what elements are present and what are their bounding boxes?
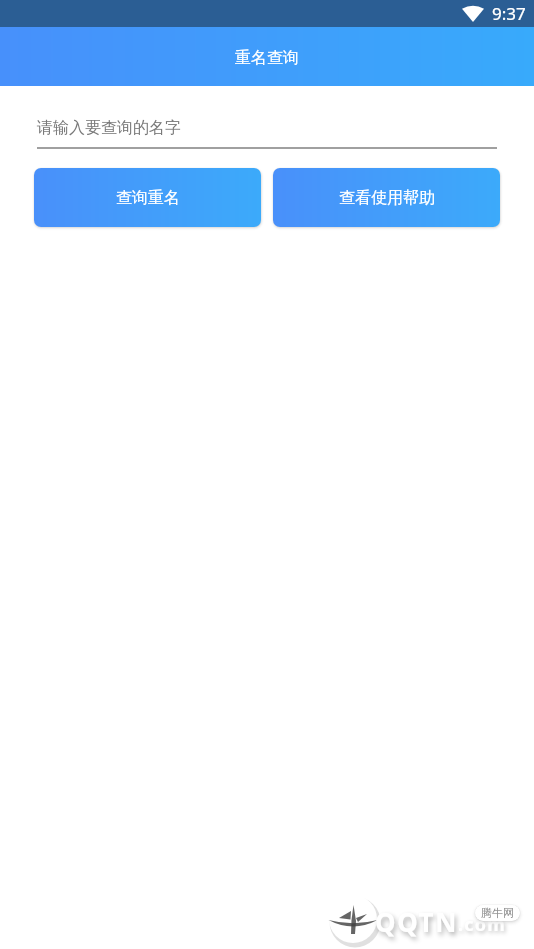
- button[interactable]: 请输入要查询的名字: [37, 118, 497, 149]
- staticText: 腾牛网: [481, 906, 514, 920]
- staticText: 查询重名: [116, 188, 180, 208]
- staticText: 查看使用帮助: [339, 188, 435, 208]
- other: Wi-Fi signal: [462, 6, 484, 22]
- staticText: 请输入要查询的名字: [37, 118, 181, 138]
- button[interactable]: 查看使用帮助: [273, 168, 500, 227]
- button[interactable]: 查询重名: [34, 168, 261, 227]
- staticText: 重名查询: [235, 48, 299, 68]
- staticText: .com: [458, 912, 506, 937]
- staticText: 9:37: [492, 2, 526, 25]
- staticText: QQTN: [375, 904, 458, 939]
